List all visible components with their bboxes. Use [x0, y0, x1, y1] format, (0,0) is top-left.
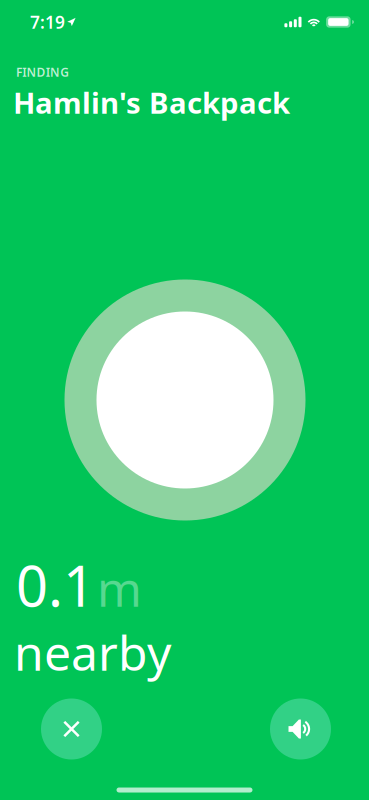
staticText: m: [97, 556, 142, 620]
staticText: FINDING: [16, 64, 69, 80]
staticText: 0.1: [16, 548, 95, 622]
staticText: 7:19: [30, 10, 65, 33]
staticText: Hamlin's Backpack: [13, 83, 290, 122]
staticText: nearby: [14, 620, 171, 684]
button[interactable]: Stop finding: [41, 698, 102, 759]
button[interactable]: Play Sound: [270, 698, 331, 759]
